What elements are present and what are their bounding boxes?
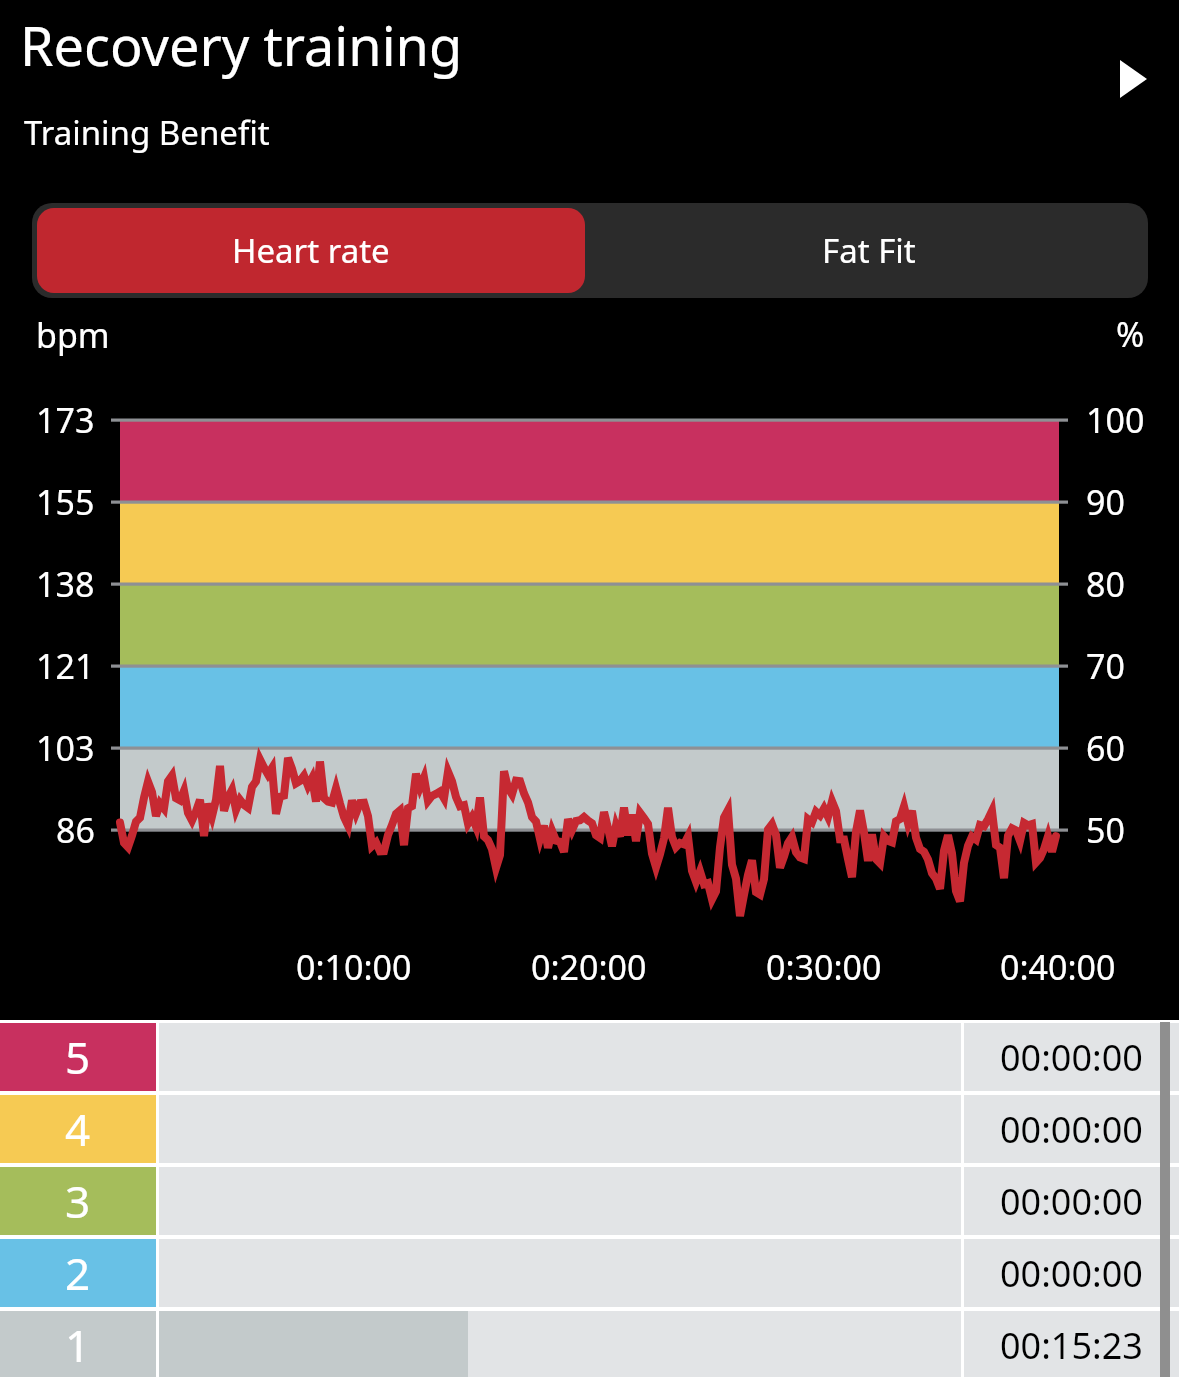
button[interactable]: Heart rate xyxy=(37,208,585,293)
staticText: 00:00:00 xyxy=(1000,1033,1143,1082)
staticText: bpm xyxy=(36,312,110,358)
staticText: 1 xyxy=(65,1315,91,1375)
staticText: 155 xyxy=(36,479,95,525)
staticText: 103 xyxy=(36,725,95,771)
staticText: 00:00:00 xyxy=(1000,1249,1143,1298)
staticText: 121 xyxy=(36,643,95,689)
button[interactable]: Play xyxy=(1095,41,1171,117)
staticText: 0:40:00 xyxy=(1000,944,1116,990)
staticText: Recovery training xyxy=(20,8,463,82)
staticText: 0:10:00 xyxy=(296,944,412,990)
button[interactable]: 5 xyxy=(0,1023,1179,1091)
staticText: 0:30:00 xyxy=(766,944,882,990)
button[interactable]: 4 xyxy=(0,1095,1179,1163)
staticText: 90 xyxy=(1086,479,1125,525)
staticText: 3 xyxy=(65,1171,91,1231)
staticText: 70 xyxy=(1086,643,1125,689)
staticText: 100 xyxy=(1086,397,1145,443)
staticText: 00:15:23 xyxy=(1000,1321,1143,1370)
staticText: 60 xyxy=(1086,725,1125,771)
staticText: Fat Fit xyxy=(822,228,916,273)
staticText: 0:20:00 xyxy=(531,944,647,990)
staticText: 00:00:00 xyxy=(1000,1177,1143,1226)
staticText: 50 xyxy=(1086,807,1125,853)
button[interactable]: Fat Fit xyxy=(590,203,1148,298)
staticText: 173 xyxy=(36,397,95,443)
staticText: 5 xyxy=(65,1027,91,1087)
staticText: 80 xyxy=(1086,561,1125,607)
staticText: Training Benefit xyxy=(24,110,270,155)
staticText: 2 xyxy=(65,1243,91,1303)
staticText: 138 xyxy=(36,561,95,607)
staticText: 00:00:00 xyxy=(1000,1105,1143,1154)
staticText: % xyxy=(1116,311,1145,357)
button[interactable]: 2 xyxy=(0,1239,1179,1307)
staticText: Heart rate xyxy=(232,228,390,273)
button[interactable]: 1 xyxy=(0,1311,1179,1377)
button[interactable]: 3 xyxy=(0,1167,1179,1235)
staticText: 86 xyxy=(56,807,95,853)
staticText: 4 xyxy=(65,1099,91,1159)
